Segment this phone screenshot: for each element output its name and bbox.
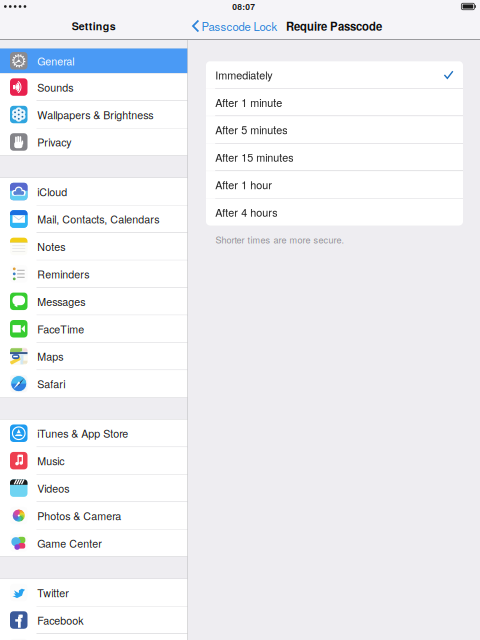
button[interactable]: Passcode Lock bbox=[187, 13, 286, 39]
staticText: Wallpapers & Brightness bbox=[37, 107, 153, 122]
staticText: General bbox=[37, 53, 74, 68]
staticText: Safari bbox=[37, 376, 65, 391]
button[interactable]: Music bbox=[0, 447, 187, 474]
button[interactable]: After 5 minutes bbox=[206, 116, 463, 143]
staticText: Sounds bbox=[37, 79, 73, 95]
staticText: Reminders bbox=[37, 266, 89, 281]
staticText: After 4 hours bbox=[215, 204, 277, 220]
button[interactable]: General bbox=[0, 48, 187, 73]
staticText: Settings bbox=[72, 18, 116, 34]
button[interactable]: Twitter bbox=[0, 579, 187, 606]
button[interactable]: Privacy bbox=[0, 128, 187, 155]
staticText: Require Passcode bbox=[286, 18, 382, 34]
staticText: After 5 minutes bbox=[215, 122, 287, 137]
button[interactable]: After 1 hour bbox=[206, 171, 463, 198]
staticText: Game Center bbox=[37, 535, 102, 551]
button[interactable]: iCloud bbox=[0, 178, 187, 205]
staticText: Messages bbox=[37, 294, 85, 309]
staticText: FaceTime bbox=[37, 321, 84, 336]
button[interactable]: Game Center bbox=[0, 529, 187, 556]
button[interactable]: After 4 hours bbox=[206, 199, 463, 225]
button[interactable]: Flickr bbox=[0, 634, 187, 640]
staticText: Facebook bbox=[37, 612, 83, 628]
staticText: Immediately bbox=[215, 67, 272, 82]
staticText: Music bbox=[37, 453, 64, 468]
button[interactable]: Photos & Camera bbox=[0, 502, 187, 529]
button[interactable]: Facebook bbox=[0, 606, 187, 633]
button[interactable]: Reminders bbox=[0, 260, 187, 287]
staticText: iCloud bbox=[37, 184, 67, 199]
button[interactable]: Safari bbox=[0, 370, 187, 397]
staticText: iTunes & App Store bbox=[37, 426, 128, 441]
staticText: After 15 minutes bbox=[215, 149, 293, 165]
button[interactable]: Messages bbox=[0, 288, 187, 315]
button[interactable]: FaceTime bbox=[0, 315, 187, 342]
button[interactable]: Notes bbox=[0, 233, 187, 260]
button[interactable]: Immediately bbox=[206, 61, 463, 88]
staticText: Shorter times are more secure. bbox=[215, 233, 344, 246]
button[interactable]: iTunes & App Store bbox=[0, 420, 187, 447]
staticText: Videos bbox=[37, 480, 69, 496]
staticText: Passcode Lock bbox=[201, 18, 277, 34]
staticText: Privacy bbox=[37, 134, 71, 150]
staticText: Twitter bbox=[37, 585, 69, 600]
button[interactable]: Sounds bbox=[0, 74, 187, 100]
staticText: After 1 hour bbox=[215, 177, 272, 192]
button[interactable]: Mail, Contacts, Calendars bbox=[0, 205, 187, 232]
button[interactable]: Maps bbox=[0, 343, 187, 370]
staticText: Maps bbox=[37, 349, 63, 364]
staticText: After 1 minute bbox=[215, 94, 282, 110]
staticText: Notes bbox=[37, 239, 65, 254]
staticText: Photos & Camera bbox=[37, 508, 121, 523]
button[interactable]: Wallpapers & Brightness bbox=[0, 101, 187, 128]
button[interactable]: Videos bbox=[0, 475, 187, 501]
button[interactable]: After 1 minute bbox=[206, 89, 463, 116]
staticText: Mail, Contacts, Calendars bbox=[37, 211, 159, 227]
button[interactable]: After 15 minutes bbox=[206, 144, 463, 170]
staticText: 08:07 bbox=[232, 0, 255, 13]
